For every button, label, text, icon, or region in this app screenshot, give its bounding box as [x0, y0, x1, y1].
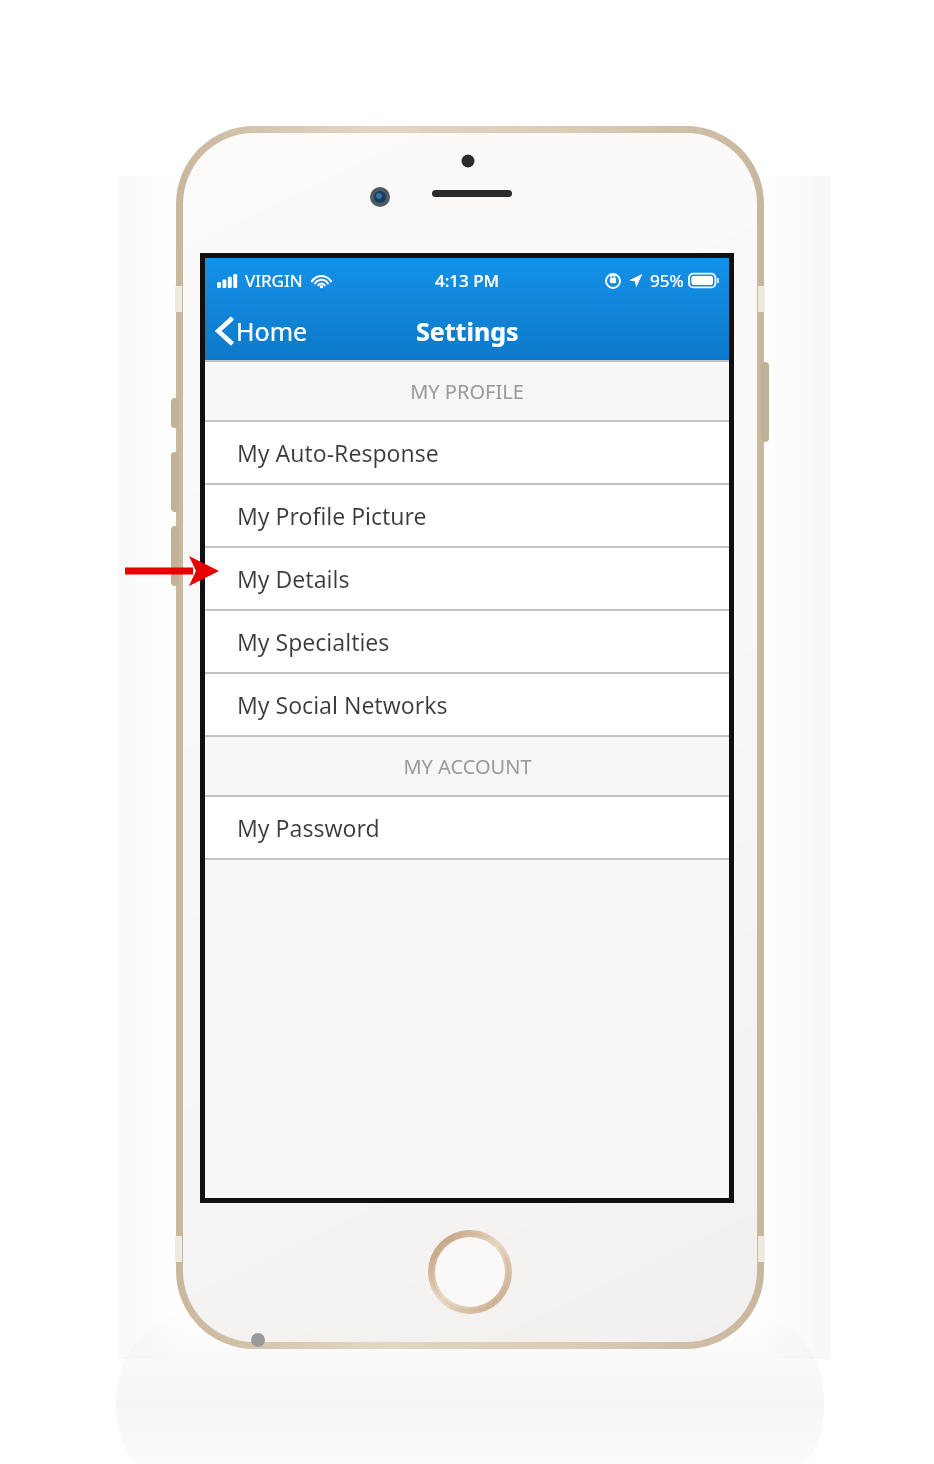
button[interactable]: My Social Networks — [205, 674, 729, 735]
button[interactable]: My Auto-Response — [205, 422, 729, 483]
button[interactable]: My Specialties — [205, 611, 729, 672]
staticText: MY PROFILE — [410, 378, 524, 405]
staticText: VIRGIN — [245, 269, 303, 292]
staticText: MY ACCOUNT — [403, 753, 532, 780]
staticText: My Specialties — [237, 626, 390, 657]
staticText: Settings — [416, 314, 519, 348]
other: Battery 95 percent — [689, 273, 719, 288]
other: Rotation lock — [605, 273, 621, 289]
button[interactable]: My Details — [205, 548, 729, 609]
staticText: My Social Networks — [237, 689, 448, 720]
staticText: Home — [236, 314, 308, 348]
staticText: My Password — [237, 812, 380, 843]
other: Location — [628, 273, 643, 288]
button[interactable]: My Profile Picture — [205, 485, 729, 546]
button[interactable]: Home — [205, 308, 322, 354]
staticText: My Profile Picture — [237, 500, 427, 531]
staticText: My Auto-Response — [237, 437, 439, 468]
staticText: 95% — [650, 269, 684, 292]
button[interactable]: My Password — [205, 797, 729, 858]
staticText: 4:13 PM — [435, 269, 500, 292]
staticText: My Details — [237, 563, 350, 594]
